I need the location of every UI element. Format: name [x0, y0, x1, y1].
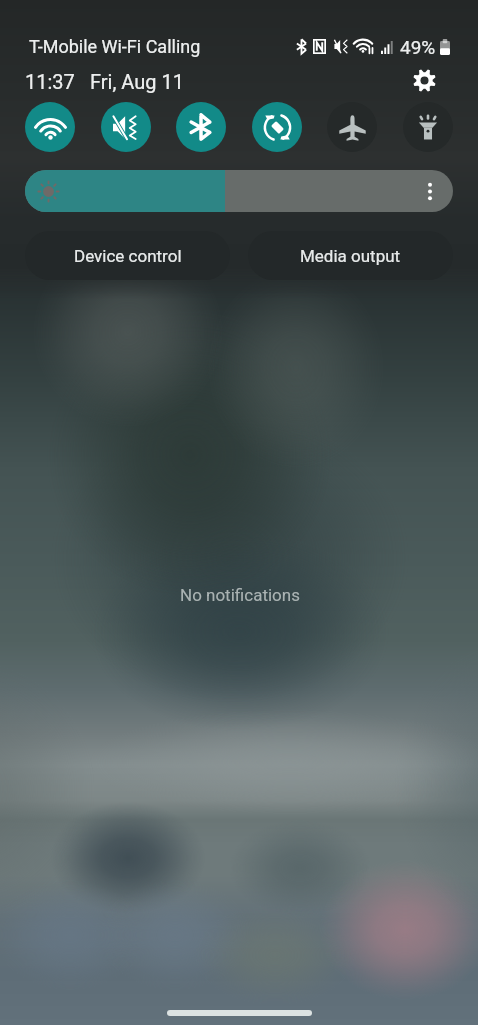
- button[interactable]: Wi-Fi: [25, 102, 75, 152]
- staticText: Fri, Aug 11: [90, 70, 184, 93]
- staticText: No notifications: [180, 585, 300, 605]
- staticText: 49%: [400, 36, 436, 58]
- button[interactable]: Brightness: [25, 170, 453, 212]
- staticText: Device control: [74, 246, 182, 266]
- button[interactable]: Settings: [407, 63, 441, 97]
- button[interactable]: Sound mode: [101, 102, 151, 152]
- staticText: T-Mobile Wi-Fi Calling: [29, 36, 201, 57]
- staticText: 11:37: [25, 70, 75, 93]
- button[interactable]: Airplane mode: [327, 102, 377, 152]
- button[interactable]: Device control: [25, 231, 230, 280]
- staticText: Media output: [300, 246, 401, 266]
- button[interactable]: Flashlight: [403, 102, 453, 152]
- button[interactable]: Auto-rotate: [252, 102, 302, 152]
- button[interactable]: Bluetooth: [176, 102, 226, 152]
- button[interactable]: Media output: [248, 231, 453, 280]
